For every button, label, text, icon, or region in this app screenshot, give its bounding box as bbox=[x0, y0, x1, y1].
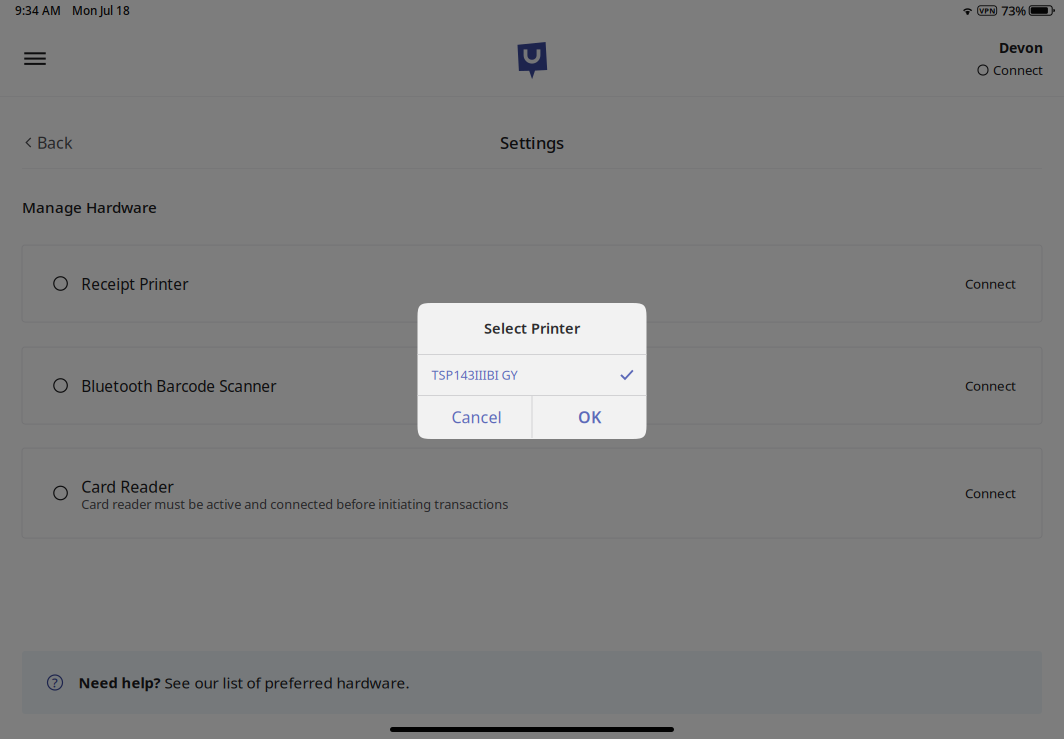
button[interactable]: Cancel bbox=[417, 396, 531, 438]
staticText: Mon Jul 18 bbox=[72, 2, 130, 18]
staticText: Connect bbox=[965, 484, 1016, 502]
staticText: Bluetooth Barcode Scanner bbox=[81, 376, 276, 396]
button[interactable]: Back bbox=[17, 124, 81, 161]
staticText: 9:34 AM bbox=[15, 2, 61, 18]
button[interactable]: Menu bbox=[16, 39, 54, 77]
staticText: ? bbox=[52, 674, 58, 691]
button[interactable]: ? bbox=[22, 651, 1042, 714]
staticText: Connect bbox=[965, 274, 1016, 293]
button[interactable]: Bluetooth Barcode Scanner bbox=[22, 347, 1042, 424]
staticText: Need help? bbox=[78, 672, 160, 692]
staticText: Manage Hardware bbox=[22, 197, 157, 217]
staticText: Connect bbox=[993, 61, 1043, 79]
button[interactable]: Receipt Printer bbox=[22, 245, 1042, 322]
staticText: Settings bbox=[500, 131, 564, 154]
staticText: Back bbox=[37, 132, 73, 153]
staticText: Select Printer bbox=[484, 318, 580, 338]
staticText: OK bbox=[578, 406, 601, 428]
staticText: Card Reader bbox=[81, 476, 174, 497]
staticText: Connect bbox=[965, 376, 1016, 395]
staticText: 73% bbox=[1001, 2, 1026, 19]
button[interactable]: Connect bbox=[978, 61, 1043, 79]
staticText: Card reader must be active and connected… bbox=[81, 495, 508, 513]
button[interactable]: TSP143IIIBI GY bbox=[417, 355, 646, 395]
staticText: TSP143IIIBI GY bbox=[431, 366, 517, 384]
staticText: Cancel bbox=[451, 406, 501, 428]
staticText: Receipt Printer bbox=[81, 274, 188, 294]
button[interactable]: OK bbox=[532, 396, 646, 438]
staticText: See our list of preferred hardware. bbox=[160, 672, 409, 693]
staticText: Devon bbox=[999, 38, 1043, 57]
staticText: VPN bbox=[979, 5, 995, 16]
button[interactable]: Card Reader bbox=[22, 448, 1042, 538]
